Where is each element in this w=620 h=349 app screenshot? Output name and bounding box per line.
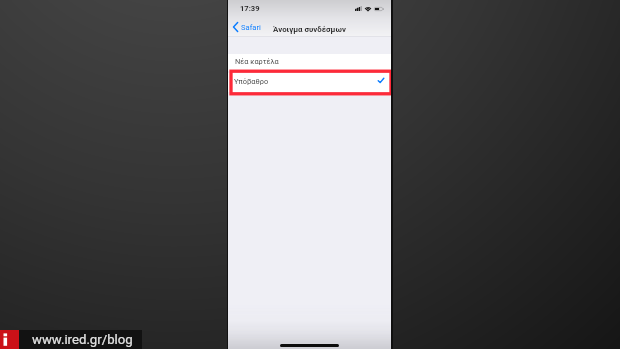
other: Selected <box>378 78 384 83</box>
staticText: Άνοιγμα συνδέσμων <box>273 25 346 34</box>
staticText: Υπόβαθρο <box>234 77 269 86</box>
button[interactable]: Νέα καρτέλα <box>228 54 391 71</box>
staticText: www.ired.gr/blog <box>32 332 133 347</box>
button[interactable]: Safari <box>228 20 266 34</box>
staticText: Νέα καρτέλα <box>235 57 279 66</box>
button[interactable]: www.ired.gr/blog <box>0 330 142 349</box>
staticText: Safari <box>241 23 261 32</box>
button[interactable]: Υπόβαθρο <box>228 73 391 92</box>
staticText: 17:39 <box>240 4 260 13</box>
